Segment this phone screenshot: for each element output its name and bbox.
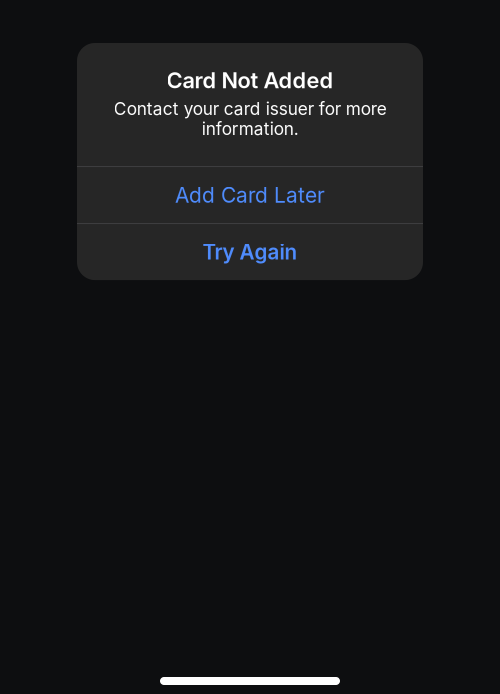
staticText: Try Again	[202, 240, 297, 265]
button[interactable]: Add Card Later	[77, 167, 423, 223]
staticText: Card Not Added	[166, 67, 333, 93]
staticText: Add Card Later	[175, 182, 325, 208]
button[interactable]: Try Again	[77, 224, 423, 280]
staticText: Contact your card issuer for more inform…	[113, 98, 386, 139]
